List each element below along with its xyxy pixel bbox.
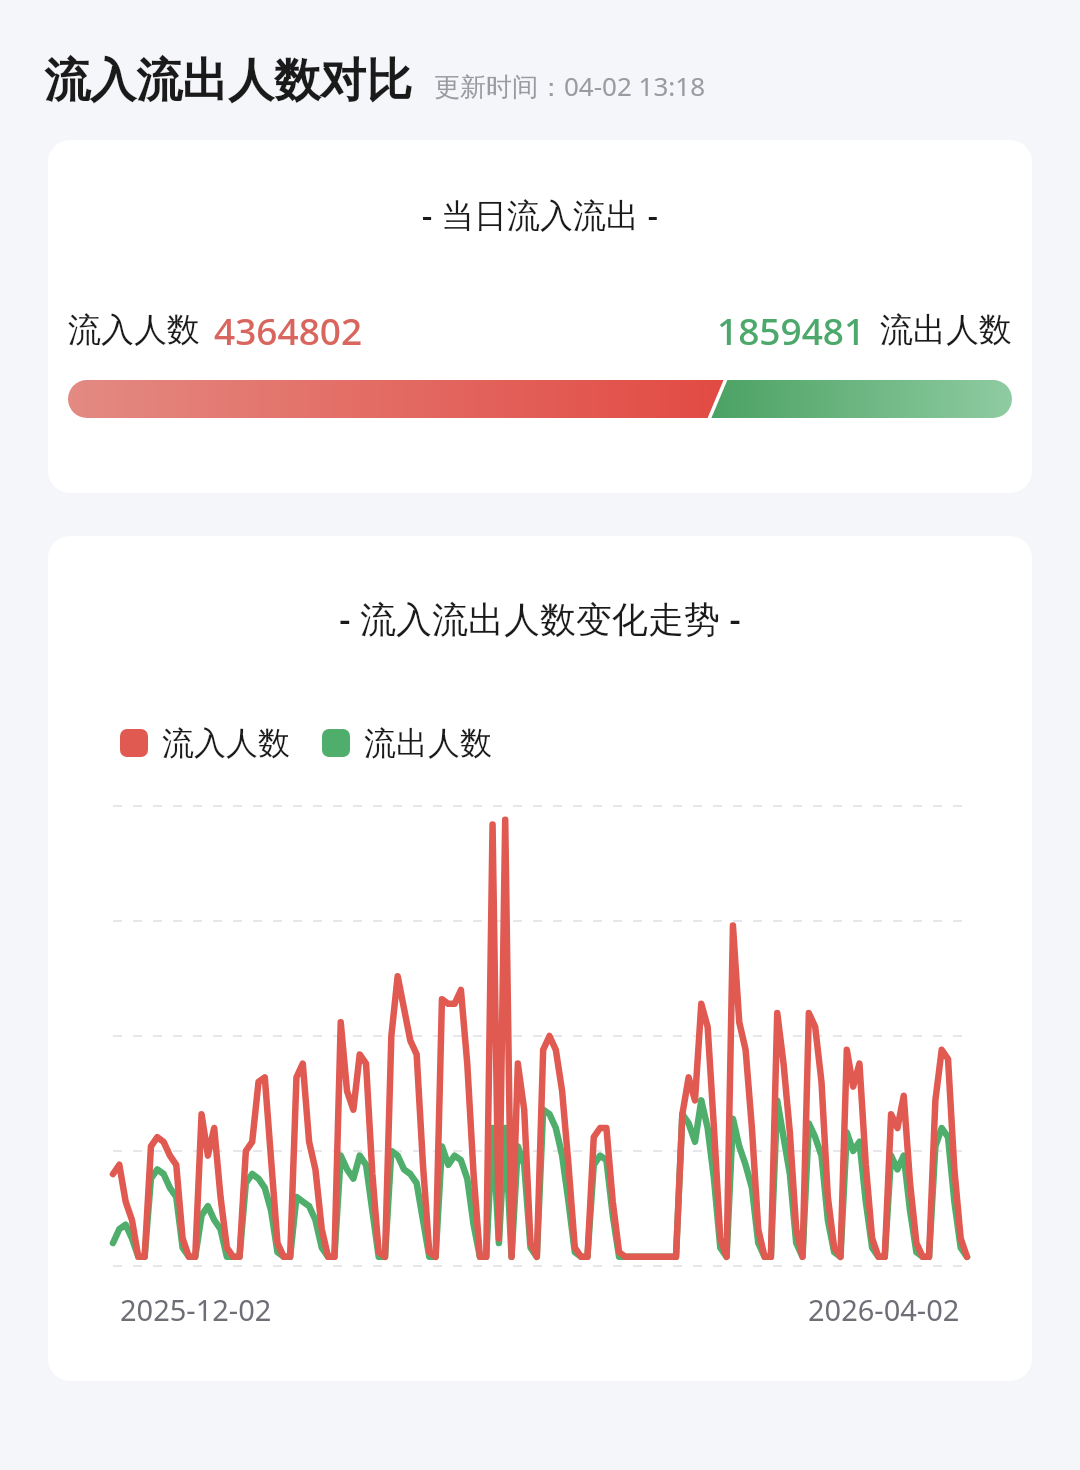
staticText: 4364802 <box>214 305 363 355</box>
staticText: 2025-12-02 <box>120 1290 272 1329</box>
staticText: - 当日流入流出 - <box>48 192 1032 237</box>
staticText: 流出人数 <box>364 723 492 763</box>
button[interactable]: - 当日流入流出 - <box>48 140 1032 493</box>
staticText: 流入人数 <box>162 723 290 763</box>
staticText: 1859481 <box>717 305 866 355</box>
other: 流入流出人数变化走势图 <box>113 806 967 1266</box>
button[interactable]: 流出人数 <box>322 723 492 763</box>
staticText: 流入流出人数对比 <box>44 52 412 110</box>
staticText: 更新时间：04-02 13:18 <box>434 68 706 104</box>
staticText: 2026-04-02 <box>808 1290 960 1329</box>
button[interactable]: 流入人数 <box>120 723 290 763</box>
staticText: 流出人数 <box>880 309 1012 351</box>
staticText: - 流入流出人数变化走势 - <box>48 594 1032 643</box>
staticText: 流入人数 <box>68 309 200 351</box>
button[interactable]: - 流入流出人数变化走势 - <box>48 536 1032 1381</box>
